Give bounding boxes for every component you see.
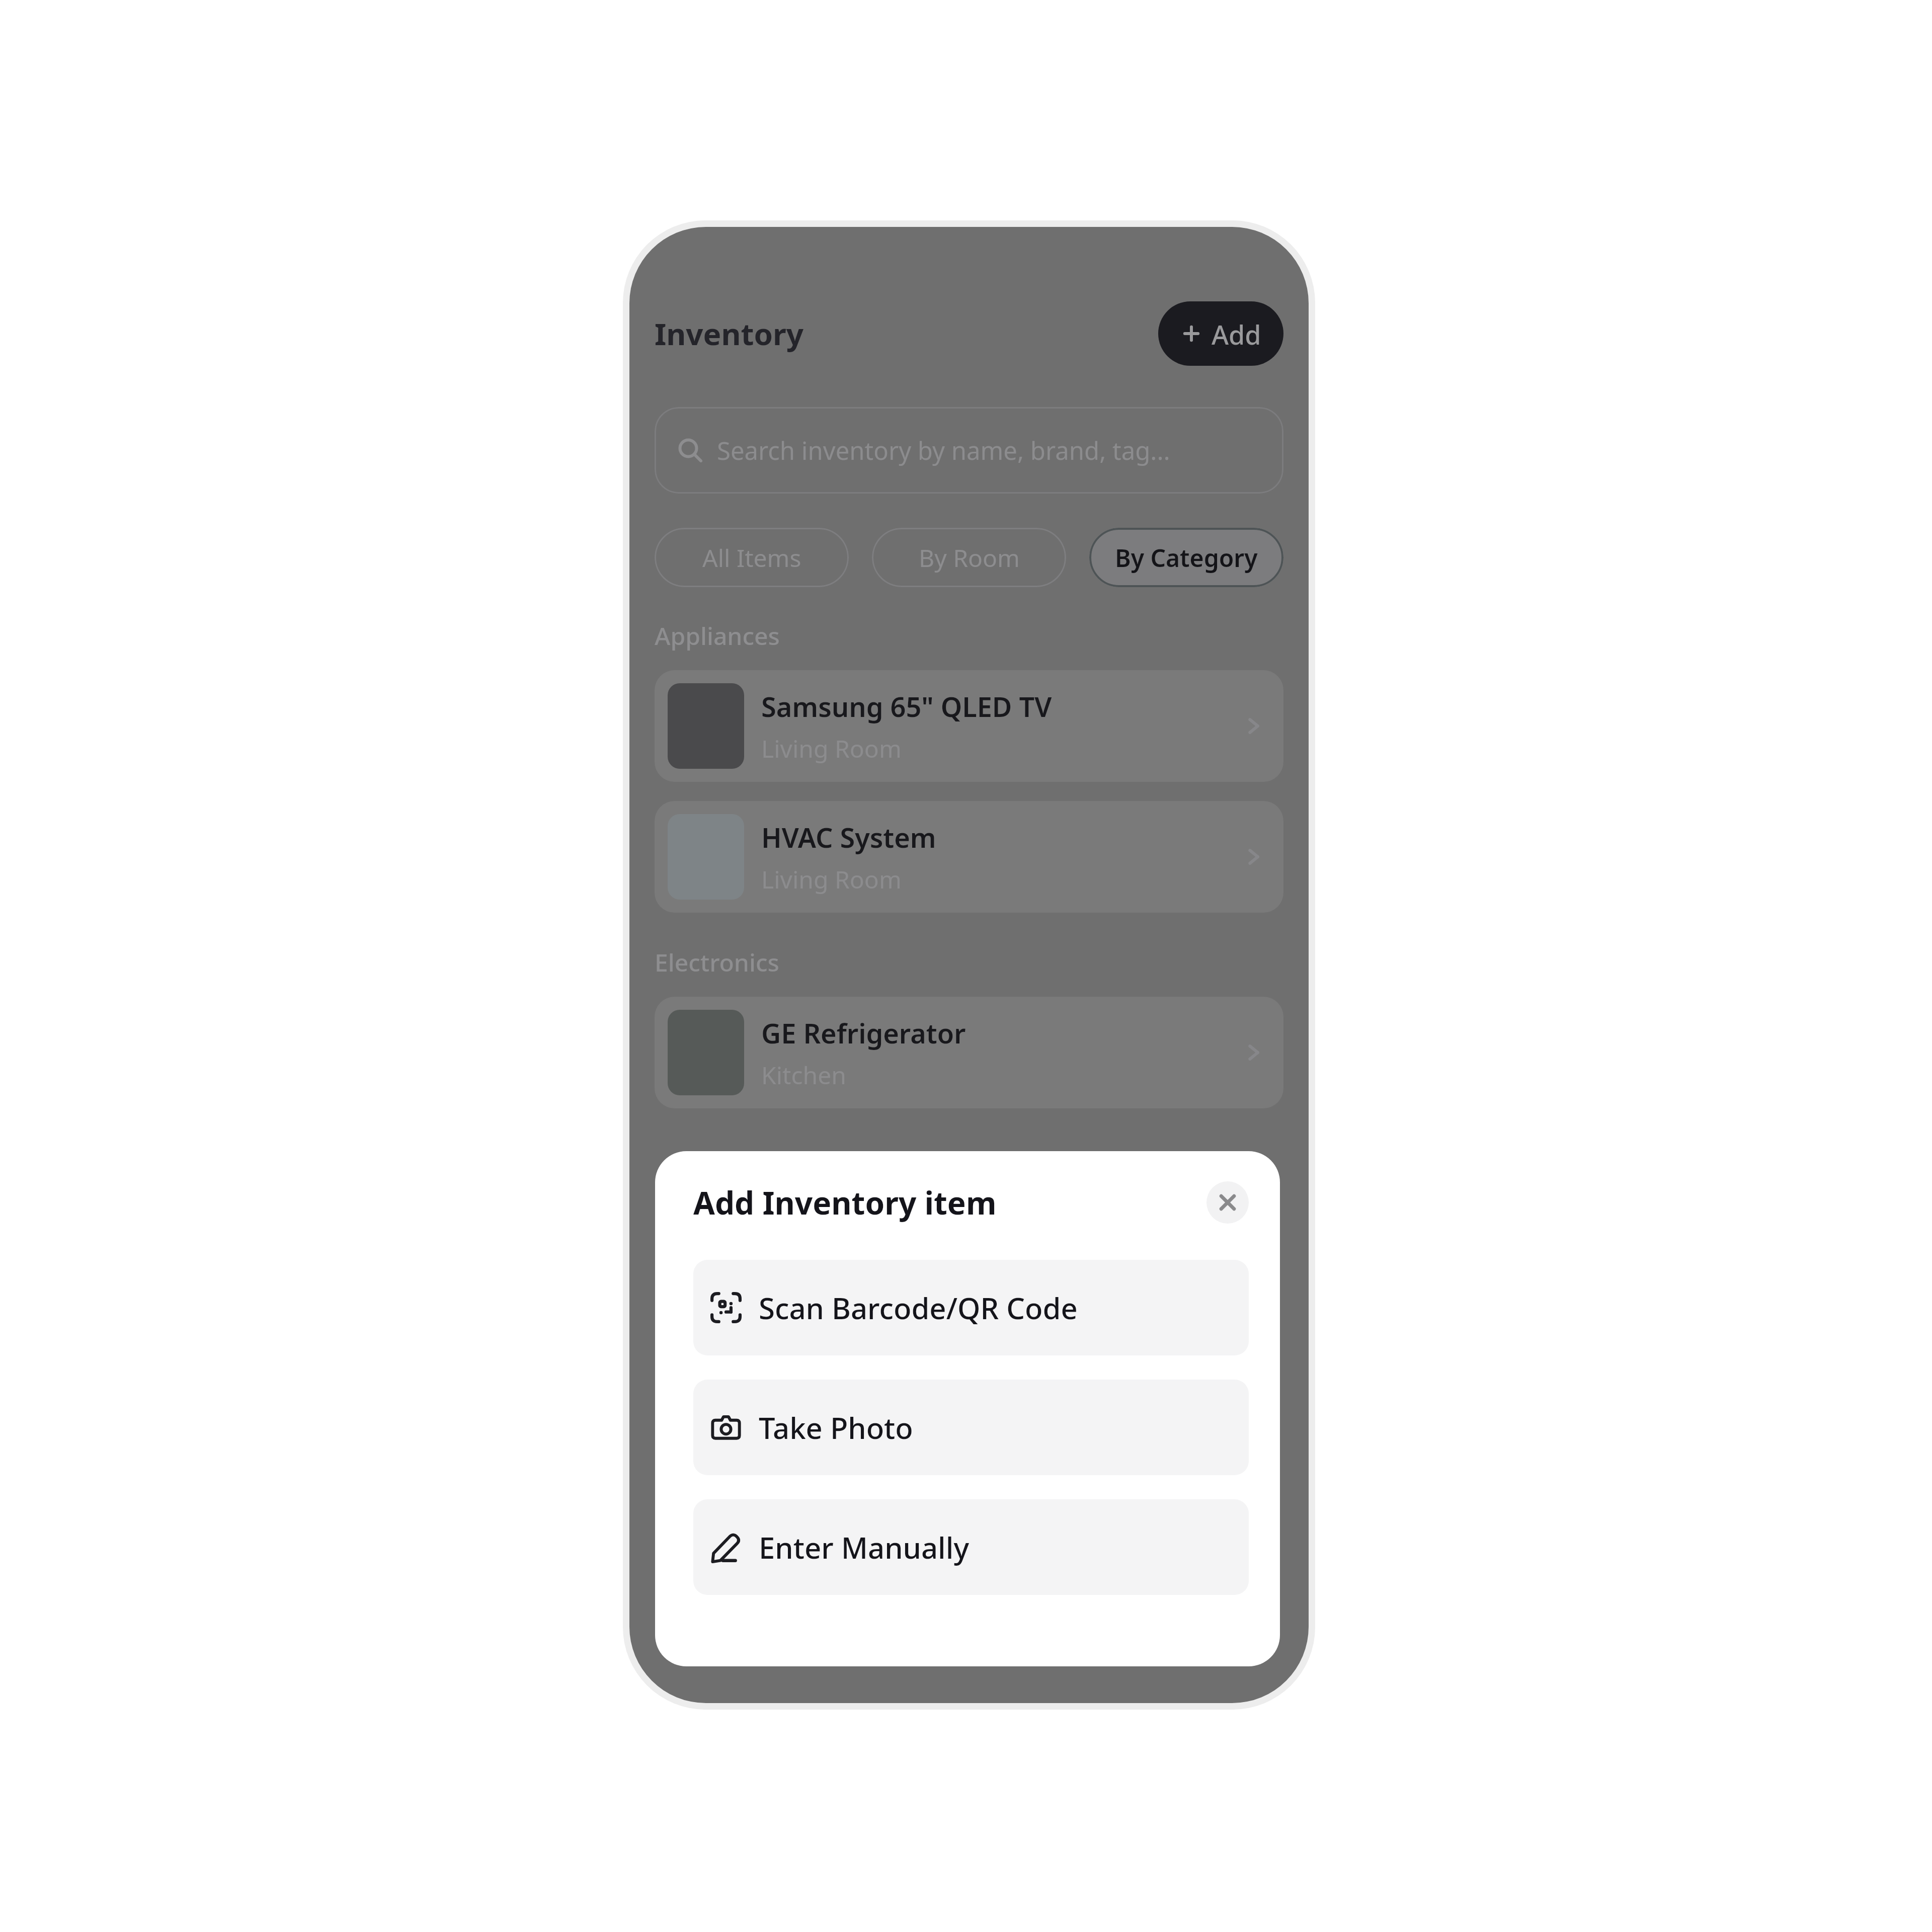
staticText: Electronics — [655, 946, 779, 979]
button[interactable]: Close — [1206, 1181, 1249, 1224]
button[interactable]: By Category — [1089, 528, 1283, 587]
staticText: Add Inventory item — [693, 1181, 997, 1224]
staticText: HVAC System — [761, 819, 936, 856]
button[interactable]: Take Photo — [693, 1380, 1249, 1475]
staticText: Search inventory by name, brand, tag... — [717, 434, 1170, 467]
staticText: Take Photo — [759, 1408, 913, 1447]
staticText: Samsung 65" QLED TV — [761, 688, 1052, 725]
staticText: Enter Manually — [759, 1527, 970, 1567]
staticText: By Room — [919, 541, 1020, 574]
button[interactable]: Search inventory by name, brand, tag... — [655, 407, 1283, 494]
staticText: By Category — [1115, 541, 1258, 574]
button[interactable]: All Items — [655, 528, 849, 587]
button[interactable]: HVAC System — [655, 801, 1283, 913]
staticText: GE Refrigerator — [761, 1014, 966, 1052]
staticText: Kitchen — [761, 1059, 846, 1091]
staticText: Living Room — [761, 732, 902, 765]
button[interactable]: Samsung 65" QLED TV — [655, 670, 1283, 782]
staticText: Living Room — [761, 863, 902, 896]
staticText: All Items — [702, 541, 801, 574]
staticText: Add — [1212, 316, 1261, 351]
button[interactable]: Enter Manually — [693, 1499, 1249, 1595]
button[interactable]: GE Refrigerator — [655, 997, 1283, 1108]
button[interactable]: Add — [1158, 301, 1283, 366]
staticText: Inventory — [655, 313, 804, 354]
staticText: Scan Barcode/QR Code — [759, 1288, 1078, 1328]
button[interactable]: Scan Barcode/QR Code — [693, 1260, 1249, 1355]
button[interactable]: By Room — [872, 528, 1066, 587]
staticText: Appliances — [655, 619, 780, 652]
